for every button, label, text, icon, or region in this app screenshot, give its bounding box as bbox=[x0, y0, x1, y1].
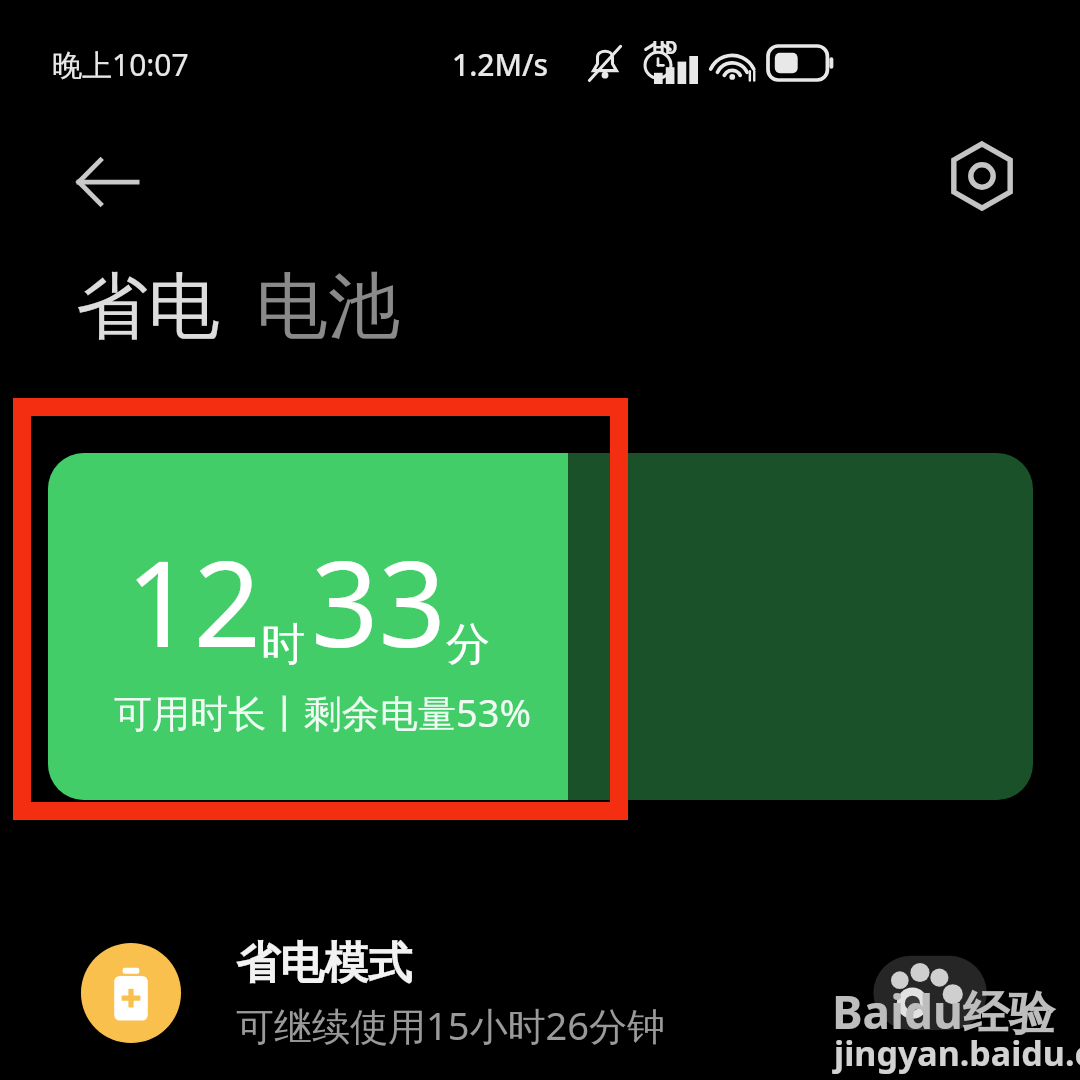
button[interactable]: 省电 bbox=[76, 262, 220, 353]
staticText: 晚上10:07 bbox=[52, 44, 189, 85]
staticText: 电池 bbox=[256, 262, 400, 353]
staticText: 时 bbox=[261, 617, 305, 672]
staticText: 省电模式 bbox=[236, 936, 412, 991]
staticText: 省电 bbox=[76, 262, 220, 353]
button[interactable]: 电池 bbox=[256, 262, 400, 353]
staticText: jingyan.baidu.com bbox=[834, 1030, 1080, 1076]
staticText: 可用时长丨剩余电量53% bbox=[114, 686, 532, 738]
staticText: 1.2M/s bbox=[452, 44, 549, 85]
staticText: Baidu经验 bbox=[832, 980, 1055, 1043]
button[interactable]: Back bbox=[56, 130, 160, 234]
staticText: 12 bbox=[126, 521, 261, 682]
staticText: 33 bbox=[311, 521, 446, 682]
button[interactable]: 省电模式 bbox=[0, 928, 1080, 1058]
staticText: 可继续使用15小时26分钟 bbox=[236, 999, 665, 1051]
button[interactable]: 12 bbox=[48, 453, 1033, 800]
staticText: 分 bbox=[446, 617, 490, 672]
button[interactable]: Settings bbox=[930, 124, 1034, 228]
staticText: HD bbox=[652, 36, 678, 59]
